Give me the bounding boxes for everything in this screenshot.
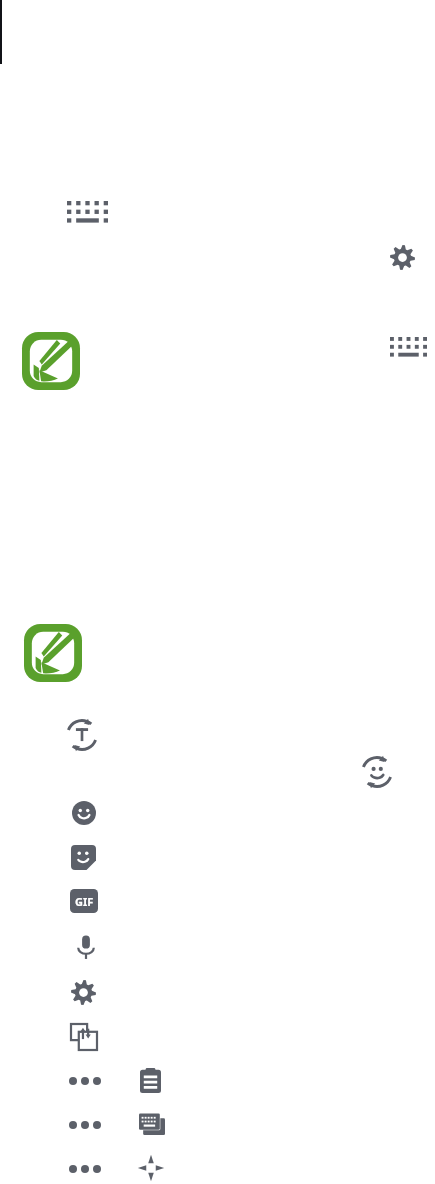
button[interactable]: Settings [390,245,415,270]
button[interactable]: More options [69,1077,101,1085]
button[interactable]: Voice input [73,934,94,960]
button[interactable]: More options [69,1165,101,1173]
button[interactable]: Settings [71,980,96,1005]
button[interactable]: Keyboard [67,201,108,223]
button[interactable]: Move keyboard [137,1154,165,1182]
staticText: GIF [75,894,94,909]
button[interactable]: Emoji [72,801,96,825]
button[interactable]: Keyboard [390,337,427,357]
button[interactable]: Emoji suggestions [358,753,396,791]
button[interactable]: GIF [70,889,98,913]
button[interactable]: Clipboard [140,1068,161,1093]
button[interactable]: Samsung Notes [22,332,80,390]
button[interactable]: Translate [71,1024,97,1050]
button[interactable]: Translate text [63,716,101,754]
button[interactable]: Switch keyboard [139,1113,165,1137]
button[interactable]: More options [69,1121,101,1129]
button[interactable]: Stickers [71,845,96,870]
button[interactable]: Samsung Notes [24,624,82,682]
